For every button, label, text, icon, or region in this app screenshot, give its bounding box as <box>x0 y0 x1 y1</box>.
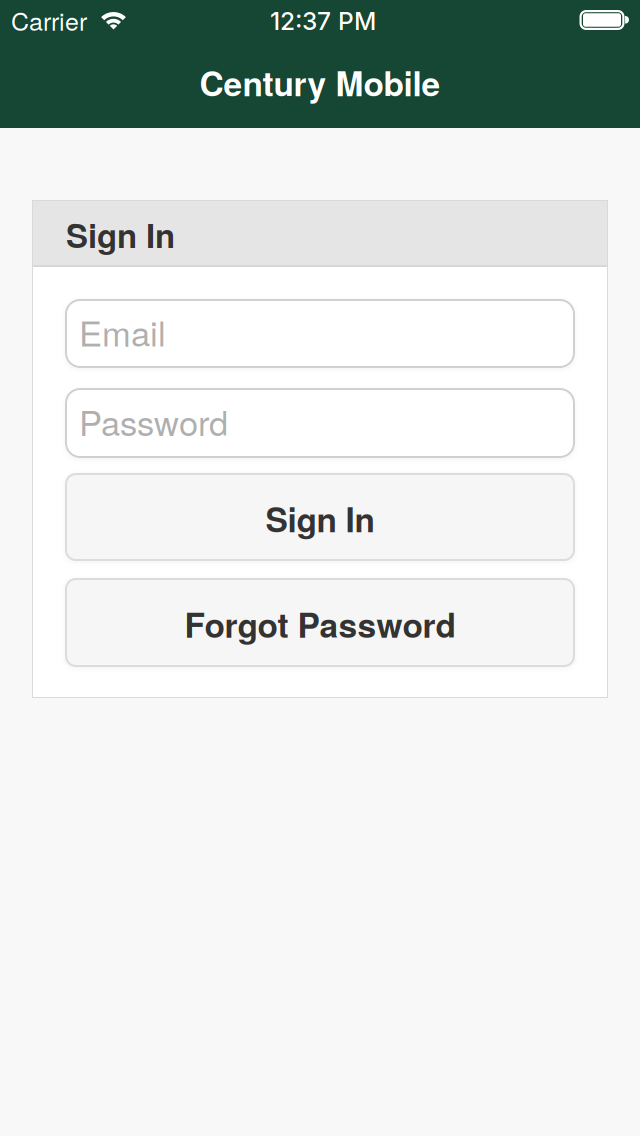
staticText: 12:37 PM <box>270 6 376 36</box>
staticText: Sign In <box>265 494 374 542</box>
staticText: Century Mobile <box>199 58 440 106</box>
button[interactable]: Password <box>65 388 575 458</box>
staticText: Carrier <box>11 2 87 38</box>
button[interactable]: Forgot Password <box>65 578 575 667</box>
staticText: Forgot Password <box>184 600 455 648</box>
button[interactable]: Email <box>65 299 575 368</box>
button[interactable]: Sign In <box>65 473 575 561</box>
staticText: Sign In <box>66 211 175 258</box>
staticText: Password <box>79 396 228 446</box>
staticText: Email <box>79 307 166 356</box>
